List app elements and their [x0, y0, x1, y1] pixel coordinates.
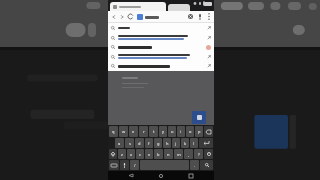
button[interactable]: Shift — [109, 149, 117, 159]
button[interactable]: y — [159, 126, 167, 137]
button[interactable]: g — [154, 138, 162, 148]
button[interactable]: d — [135, 138, 144, 148]
staticText: o — [189, 129, 192, 134]
staticText: d — [138, 141, 141, 146]
staticText: r — [143, 129, 145, 134]
button[interactable]: Backspace — [204, 126, 213, 137]
button[interactable]: s — [125, 138, 134, 148]
staticText: e — [132, 129, 135, 134]
button[interactable]: e — [129, 126, 138, 137]
staticText: . — [194, 163, 196, 168]
button[interactable]: p — [195, 126, 203, 137]
button[interactable]: Clear — [186, 12, 195, 21]
staticText: u — [171, 129, 174, 134]
button[interactable] — [168, 4, 190, 11]
button[interactable]: ? — [194, 149, 203, 159]
button[interactable] — [108, 43, 214, 51]
button[interactable]: c — [136, 149, 144, 159]
staticText: n — [167, 152, 170, 157]
button[interactable]: w — [119, 126, 128, 137]
button[interactable]: v — [145, 149, 153, 159]
staticText: h — [166, 141, 169, 146]
button[interactable]: Reload — [126, 12, 135, 21]
staticText: a — [118, 141, 121, 146]
button[interactable]: Back — [124, 171, 138, 180]
staticText: z — [121, 152, 123, 157]
staticText: l — [193, 141, 195, 146]
button[interactable]: h — [163, 138, 171, 148]
button[interactable]: More options — [204, 12, 213, 21]
button[interactable] — [108, 62, 214, 70]
staticText: / — [134, 163, 136, 168]
button[interactable]: Search — [200, 160, 213, 170]
staticText: p — [198, 129, 201, 134]
staticText: ? — [198, 152, 200, 157]
staticText: w — [122, 129, 126, 134]
button[interactable]: Emoji — [204, 149, 213, 159]
button[interactable]: u — [168, 126, 176, 137]
button[interactable]: t — [149, 126, 158, 137]
button[interactable]: o — [186, 126, 194, 137]
button[interactable] — [108, 24, 214, 32]
button[interactable]: n — [164, 149, 173, 159]
button[interactable]: Enter — [199, 138, 213, 148]
staticText: x — [130, 152, 133, 157]
button[interactable] — [137, 14, 186, 20]
staticText: c — [139, 152, 141, 157]
button[interactable]: Home — [154, 171, 168, 180]
staticText: g — [157, 141, 160, 146]
button[interactable]: r — [139, 126, 148, 137]
button[interactable]: Forward — [118, 13, 126, 21]
staticText: s — [129, 141, 131, 146]
button[interactable]: Recent apps — [184, 171, 198, 180]
button[interactable]: / — [130, 160, 139, 170]
button[interactable]: z — [118, 149, 126, 159]
button[interactable]: k — [181, 138, 189, 148]
staticText: v — [148, 152, 151, 157]
staticText: q — [112, 129, 115, 134]
button[interactable]: q — [109, 126, 118, 137]
button[interactable]: Symbols — [109, 160, 119, 170]
button[interactable]: b — [154, 149, 163, 159]
button[interactable]: i — [177, 126, 185, 137]
button[interactable]: Video thumbnail — [192, 111, 206, 124]
button[interactable]: Voice input — [120, 160, 129, 170]
button[interactable] — [108, 32, 214, 43]
button[interactable]: f — [145, 138, 153, 148]
staticText: t — [153, 129, 155, 134]
staticText: f — [148, 141, 150, 146]
button[interactable]: , — [184, 149, 193, 159]
staticText: m — [177, 152, 181, 157]
button[interactable]: l — [190, 138, 198, 148]
button[interactable]: x — [127, 149, 135, 159]
button[interactable]: a — [115, 138, 124, 148]
staticText: b — [157, 152, 160, 157]
button[interactable] — [108, 51, 214, 62]
button[interactable]: Back — [110, 13, 118, 21]
button[interactable]: j — [172, 138, 180, 148]
staticText: y — [162, 129, 165, 134]
staticText: i — [180, 129, 182, 134]
button[interactable]: Voice search — [195, 12, 204, 21]
button[interactable]: . — [190, 160, 199, 170]
staticText: k — [184, 141, 187, 146]
staticText: j — [175, 141, 177, 146]
staticText: , — [188, 152, 190, 157]
button[interactable]: m — [174, 149, 183, 159]
button[interactable] — [110, 2, 166, 11]
